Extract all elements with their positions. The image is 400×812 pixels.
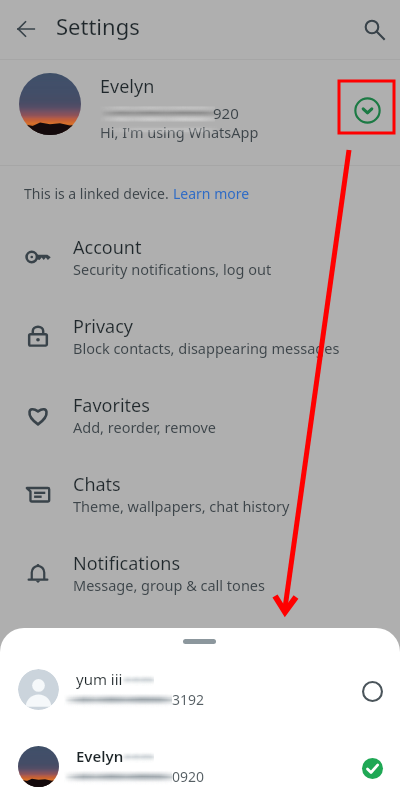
staticText: Settings	[56, 11, 140, 41]
button[interactable]: Switch account	[349, 92, 385, 128]
button[interactable]: Favorites	[0, 376, 400, 455]
button[interactable]: Privacy	[0, 297, 400, 376]
button[interactable]: Evelyn	[0, 60, 400, 165]
button[interactable]: Account	[0, 218, 400, 297]
staticText: Hi, I'm using WhatsApp	[100, 122, 259, 142]
staticText: Add, reorder, remove	[73, 417, 216, 437]
button[interactable]: Chats	[0, 455, 400, 534]
staticText: 920	[213, 103, 239, 123]
button[interactable]: Search	[352, 7, 396, 51]
staticText: Block contacts, disappearing messages	[73, 338, 340, 358]
staticText: Notifications	[73, 551, 181, 576]
button[interactable]: Back	[4, 7, 48, 51]
staticText: Message, group & call tones	[73, 575, 265, 595]
staticText: 0920	[172, 767, 205, 786]
button[interactable]: Select account	[356, 675, 388, 707]
staticText: Evelyn	[100, 74, 155, 99]
button[interactable]: Learn more	[173, 184, 250, 203]
staticText: This is a linked device.	[24, 184, 173, 203]
staticText: yum iii	[76, 669, 123, 689]
staticText: Evelyn	[76, 746, 124, 766]
staticText: Privacy	[73, 314, 134, 339]
button[interactable]: yum iii	[0, 653, 400, 730]
staticText: Account	[73, 235, 142, 260]
staticText: Security notifications, log out	[73, 259, 272, 279]
button[interactable]: Selected account	[356, 752, 388, 784]
staticText: Favorites	[73, 393, 150, 418]
staticText: Theme, wallpapers, chat history	[73, 496, 290, 516]
staticText: Chats	[73, 472, 121, 497]
button[interactable]: Evelyn	[0, 730, 400, 807]
staticText: 3192	[172, 690, 205, 709]
button[interactable]: Notifications	[0, 534, 400, 613]
